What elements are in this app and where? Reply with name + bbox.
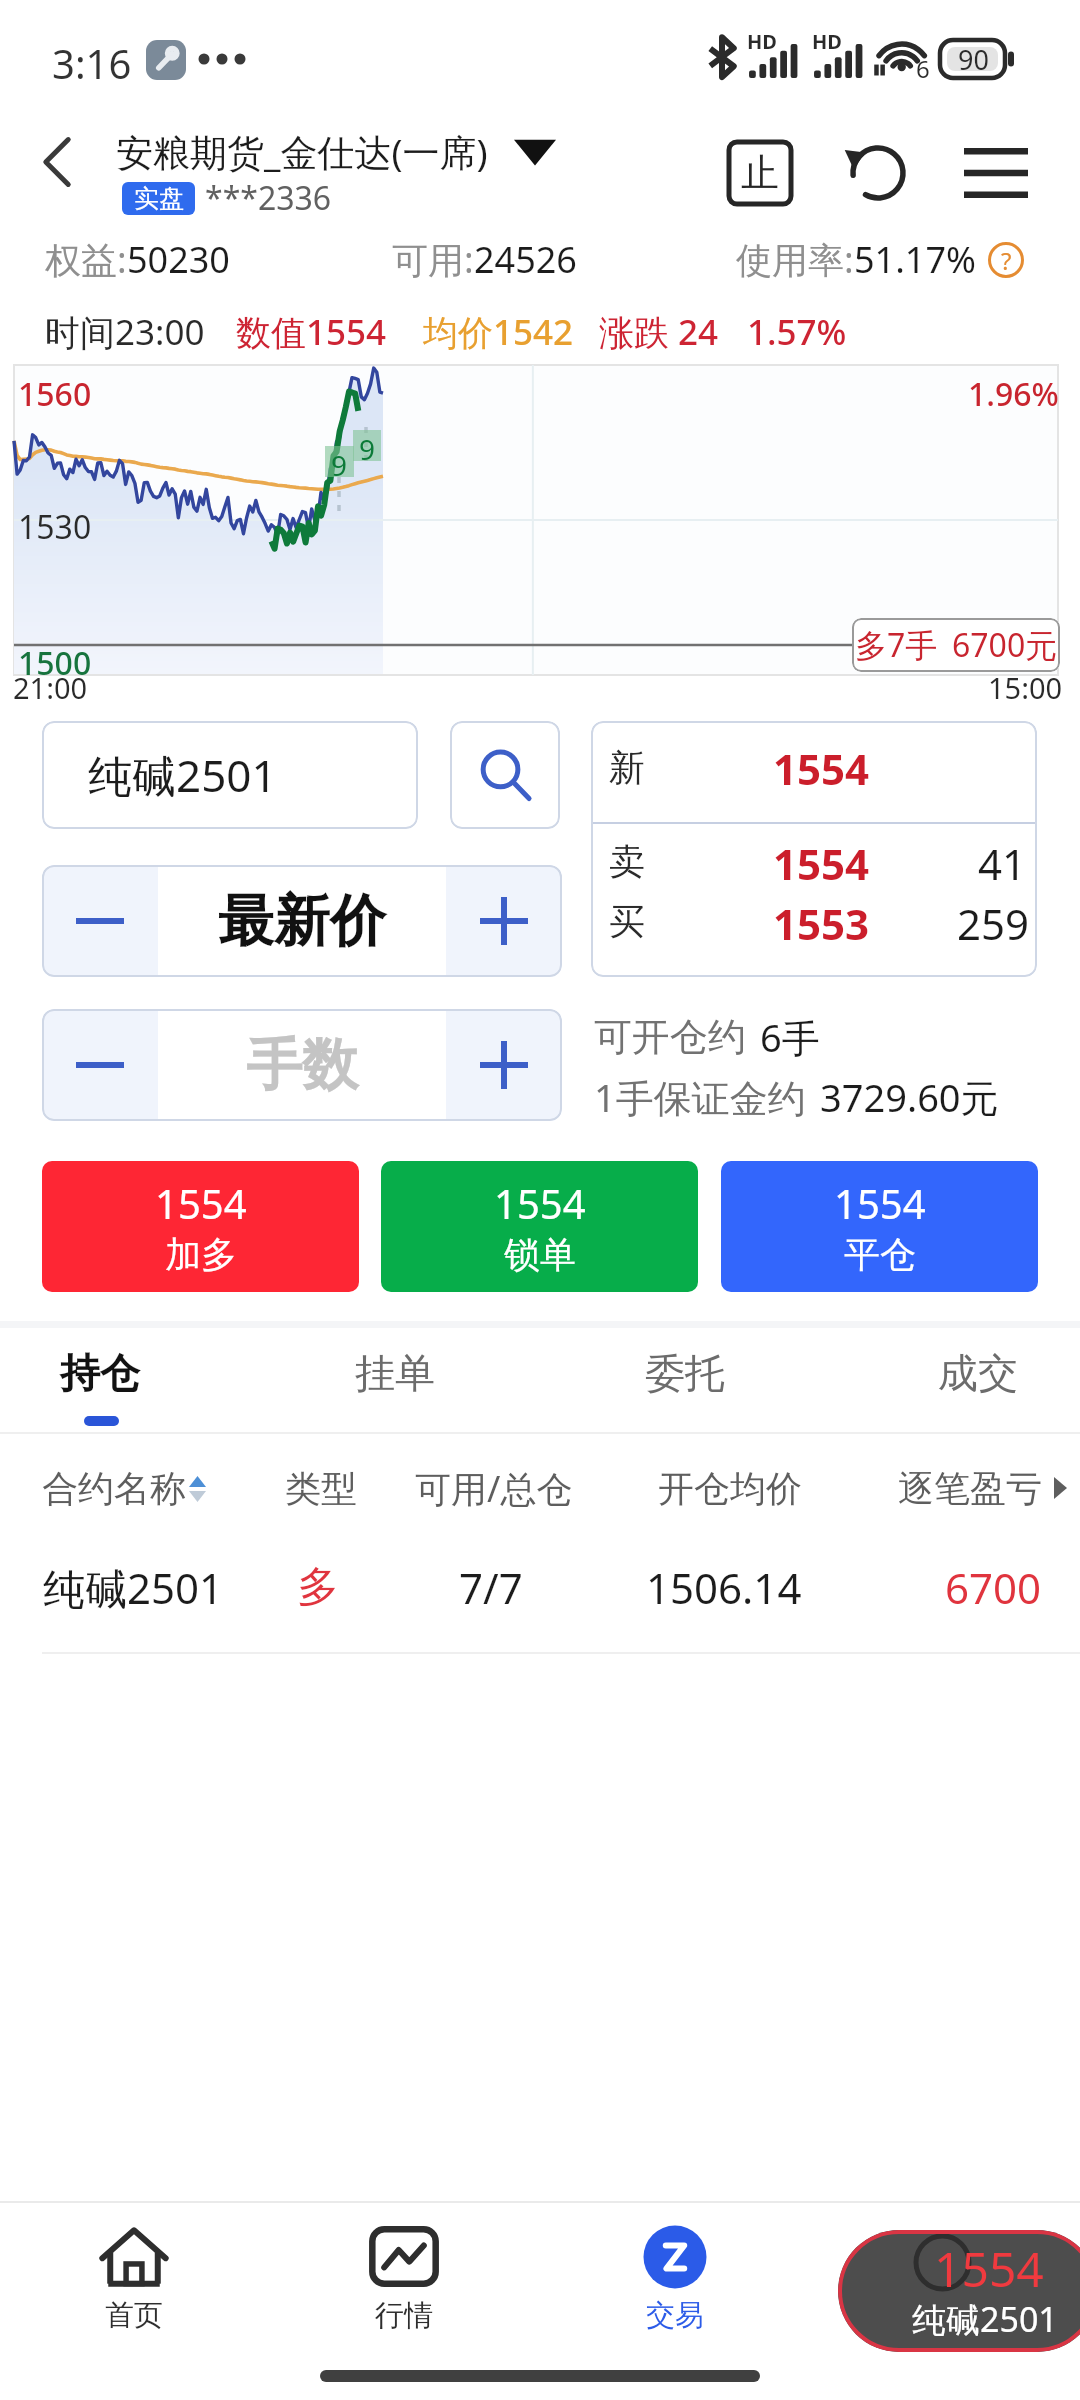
- button[interactable]: Help: [986, 240, 1026, 280]
- staticText: 权益:: [45, 235, 127, 284]
- button[interactable]: 首页: [66, 2210, 202, 2350]
- staticText: 可用:: [392, 235, 474, 284]
- staticText: 6700: [945, 1559, 1042, 1616]
- staticText: 合约名称: [42, 1466, 186, 1511]
- button[interactable]: 行情: [336, 2210, 472, 2350]
- staticText: ***2336: [205, 176, 332, 220]
- button[interactable]: Increase: [446, 1009, 562, 1121]
- staticText: 41: [978, 835, 1027, 892]
- staticText: 纯碱2501: [912, 2296, 1058, 2342]
- staticText: 多: [297, 1561, 339, 1614]
- button[interactable]: Increase: [446, 865, 562, 977]
- staticText: 1.96%: [968, 372, 1059, 416]
- button[interactable]: Stop order: [716, 129, 804, 217]
- button[interactable]: 持仓: [34, 1330, 166, 1430]
- staticText: 首页: [105, 2297, 163, 2334]
- staticText: 可用/总仓: [415, 1464, 573, 1513]
- staticText: 90: [958, 41, 989, 78]
- staticText: 1506.14: [646, 1559, 802, 1616]
- staticText: 数值1554: [236, 308, 387, 356]
- button[interactable]: 委托: [619, 1330, 751, 1430]
- staticText: 1554: [834, 1176, 926, 1230]
- staticText: 1手保证金约: [594, 1071, 806, 1123]
- staticText: 1554: [773, 835, 870, 892]
- button[interactable]: 1554: [721, 1161, 1038, 1292]
- staticText: 6手: [760, 1011, 820, 1063]
- staticText: 安粮期货_金仕达(一席): [116, 126, 488, 177]
- staticText: 1.57%: [747, 308, 847, 356]
- staticText: 锁单: [504, 1232, 576, 1277]
- staticText: 7/7: [459, 1559, 523, 1616]
- staticText: 加多: [165, 1232, 237, 1277]
- staticText: ?: [1001, 244, 1012, 277]
- button[interactable]: 挂单: [329, 1330, 461, 1430]
- staticText: 平仓: [844, 1232, 916, 1277]
- staticText: 新: [609, 745, 645, 790]
- staticText: 多7手: [855, 623, 938, 667]
- staticText: 51.17%: [854, 235, 976, 284]
- staticText: 1560: [18, 372, 92, 416]
- staticText: 50230: [127, 235, 230, 284]
- staticText: 1554: [773, 740, 870, 797]
- staticText: 1554: [155, 1176, 247, 1230]
- staticText: 1530: [18, 505, 92, 549]
- staticText: 1554: [494, 1176, 586, 1230]
- button[interactable]: Back: [26, 129, 92, 195]
- staticText: 259: [957, 895, 1030, 952]
- staticText: 涨跌 24: [599, 308, 719, 356]
- staticText: HD: [812, 28, 842, 55]
- staticText: 3729.60元: [820, 1071, 999, 1123]
- button[interactable]: 1554: [381, 1161, 698, 1292]
- staticText: 3:16: [52, 36, 132, 90]
- staticText: 15:00: [988, 668, 1063, 707]
- staticText: 1553: [773, 895, 870, 952]
- staticText: -1.96%: [952, 637, 1053, 681]
- button[interactable]: 1554: [42, 1161, 359, 1292]
- button[interactable]: Refresh: [834, 129, 922, 217]
- staticText: 24526: [474, 235, 577, 284]
- staticText: 21:00: [13, 668, 88, 707]
- staticText: 1500: [18, 641, 92, 685]
- staticText: 买: [609, 899, 645, 944]
- staticText: 可开仓约: [594, 1013, 746, 1061]
- staticText: 实盘: [134, 183, 184, 214]
- staticText: 持仓: [60, 1348, 140, 1398]
- button[interactable]: 交易: [607, 2210, 743, 2350]
- staticText: 9: [359, 430, 376, 461]
- staticText: 手数: [246, 1030, 358, 1101]
- staticText: 交易: [646, 2297, 704, 2334]
- staticText: HD: [747, 28, 777, 55]
- staticText: 6700元: [952, 623, 1058, 667]
- button[interactable]: Decrease: [42, 865, 158, 977]
- staticText: 卖: [609, 839, 645, 884]
- staticText: 成交: [938, 1348, 1018, 1398]
- staticText: 最新价: [218, 886, 386, 957]
- button[interactable]: Search: [450, 721, 560, 829]
- button[interactable]: 1554: [838, 2230, 1080, 2352]
- staticText: 开仓均价: [658, 1466, 802, 1511]
- button[interactable]: 成交: [912, 1330, 1044, 1430]
- staticText: 纯碱2501: [43, 1559, 224, 1616]
- staticText: 时间23:00: [45, 308, 205, 356]
- staticText: 纯碱2501: [88, 745, 277, 805]
- staticText: 行情: [375, 2297, 433, 2334]
- button[interactable]: Decrease: [42, 1009, 158, 1121]
- staticText: 止: [741, 149, 779, 197]
- staticText: 逐笔盈亏: [898, 1466, 1042, 1511]
- staticText: 均价1542: [423, 308, 574, 356]
- staticText: 挂单: [355, 1348, 435, 1398]
- button[interactable]: Menu: [952, 129, 1040, 217]
- staticText: 6: [916, 52, 930, 85]
- staticText: 1554: [934, 2236, 1044, 2301]
- button[interactable]: 纯碱2501: [0, 1528, 1080, 1646]
- staticText: 使用率:: [736, 235, 854, 284]
- staticText: 委托: [645, 1348, 725, 1398]
- staticText: 类型: [285, 1466, 357, 1511]
- staticText: 9: [331, 446, 348, 477]
- button[interactable]: 纯碱2501: [42, 721, 418, 829]
